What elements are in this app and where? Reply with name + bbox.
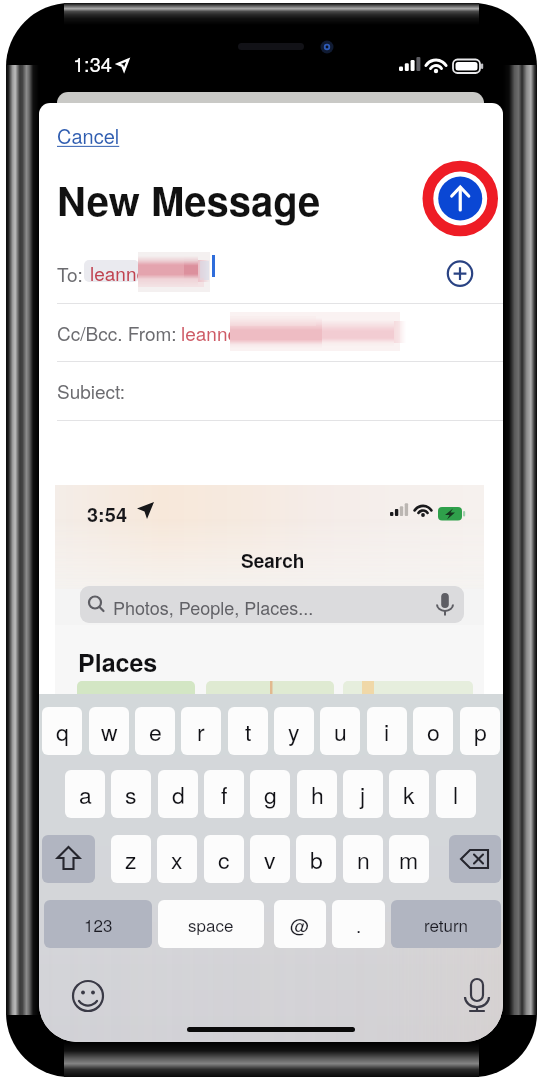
button[interactable]: b (296, 835, 336, 883)
button[interactable]: space (158, 900, 264, 948)
staticText: j (360, 778, 366, 811)
staticText: b (310, 843, 323, 876)
staticText: k (403, 778, 415, 811)
button[interactable]: x (157, 835, 197, 883)
staticText: x (171, 843, 183, 876)
button[interactable]: d (158, 770, 198, 818)
staticText: c (218, 843, 230, 876)
button[interactable]: o (413, 707, 453, 755)
staticText: 1:34 (73, 49, 112, 78)
button[interactable]: q (42, 707, 82, 755)
staticText: q (56, 715, 69, 748)
staticText: Search (241, 547, 305, 574)
button[interactable]: Backspace (449, 835, 501, 883)
staticText: s (125, 778, 137, 811)
staticText: Cc/Bcc, From: (57, 319, 177, 341)
button[interactable]: . (332, 900, 385, 948)
button[interactable]: l (436, 770, 476, 818)
button[interactable]: c (204, 835, 244, 883)
button[interactable]: v (250, 835, 290, 883)
staticText: g (264, 778, 277, 811)
staticText: e (149, 715, 162, 748)
button[interactable]: y (274, 707, 314, 755)
staticText: l (453, 778, 459, 811)
button[interactable]: Send (420, 159, 500, 239)
button[interactable]: r (181, 707, 221, 755)
button[interactable]: return (391, 900, 501, 948)
staticText: v (264, 843, 276, 876)
button[interactable]: @ (274, 900, 326, 948)
staticText: p (474, 715, 487, 748)
staticText: 123 (84, 912, 113, 936)
staticText: space (188, 912, 234, 936)
staticText: u (334, 715, 347, 748)
button[interactable]: 123 (44, 900, 152, 948)
button[interactable]: w (89, 707, 129, 755)
button[interactable]: p (460, 707, 500, 755)
staticText: To: (57, 260, 83, 282)
staticText: Subject: (57, 377, 126, 399)
staticText: i (384, 715, 390, 748)
button[interactable]: n (343, 835, 383, 883)
staticText: . (356, 911, 362, 938)
button[interactable]: Dictation (461, 977, 493, 1009)
staticText: o (427, 715, 440, 748)
staticText: f (221, 778, 228, 811)
button[interactable]: f (204, 770, 244, 818)
staticText: @ (290, 911, 310, 938)
staticText: 3:54 (87, 499, 128, 528)
button[interactable]: Shift (42, 835, 95, 883)
staticText: h (311, 778, 324, 811)
button[interactable]: u (320, 707, 360, 755)
staticText: r (197, 715, 205, 748)
button[interactable]: e (135, 707, 175, 755)
button[interactable]: i (367, 707, 407, 755)
staticText: m (399, 843, 419, 876)
staticText: Cancel (57, 121, 120, 150)
button[interactable]: Emoji keyboard (72, 980, 104, 1012)
button[interactable]: Add contact (446, 260, 474, 282)
staticText: New Message (57, 171, 321, 228)
staticText: d (172, 778, 185, 811)
button[interactable]: h (297, 770, 337, 818)
button[interactable]: g (250, 770, 290, 818)
button[interactable]: m (389, 835, 429, 883)
staticText: t (245, 715, 252, 748)
button[interactable]: k (389, 770, 429, 818)
button[interactable]: t (228, 707, 268, 755)
button[interactable]: j (343, 770, 383, 818)
button[interactable]: s (111, 770, 151, 818)
staticText: y (288, 715, 300, 748)
staticText: Places (78, 644, 158, 680)
staticText: leanne (90, 259, 148, 281)
button[interactable]: a (65, 770, 105, 818)
staticText: z (125, 843, 137, 876)
staticText: a (79, 778, 92, 811)
staticText: n (357, 843, 370, 876)
staticText: w (101, 715, 118, 748)
staticText: return (424, 912, 469, 936)
button[interactable]: Cancel (57, 121, 120, 150)
staticText: Photos, People, Places... (113, 594, 314, 620)
button[interactable]: z (111, 835, 151, 883)
staticText: leanne (181, 319, 239, 341)
button[interactable]: Photos, People, Places... (80, 586, 464, 623)
